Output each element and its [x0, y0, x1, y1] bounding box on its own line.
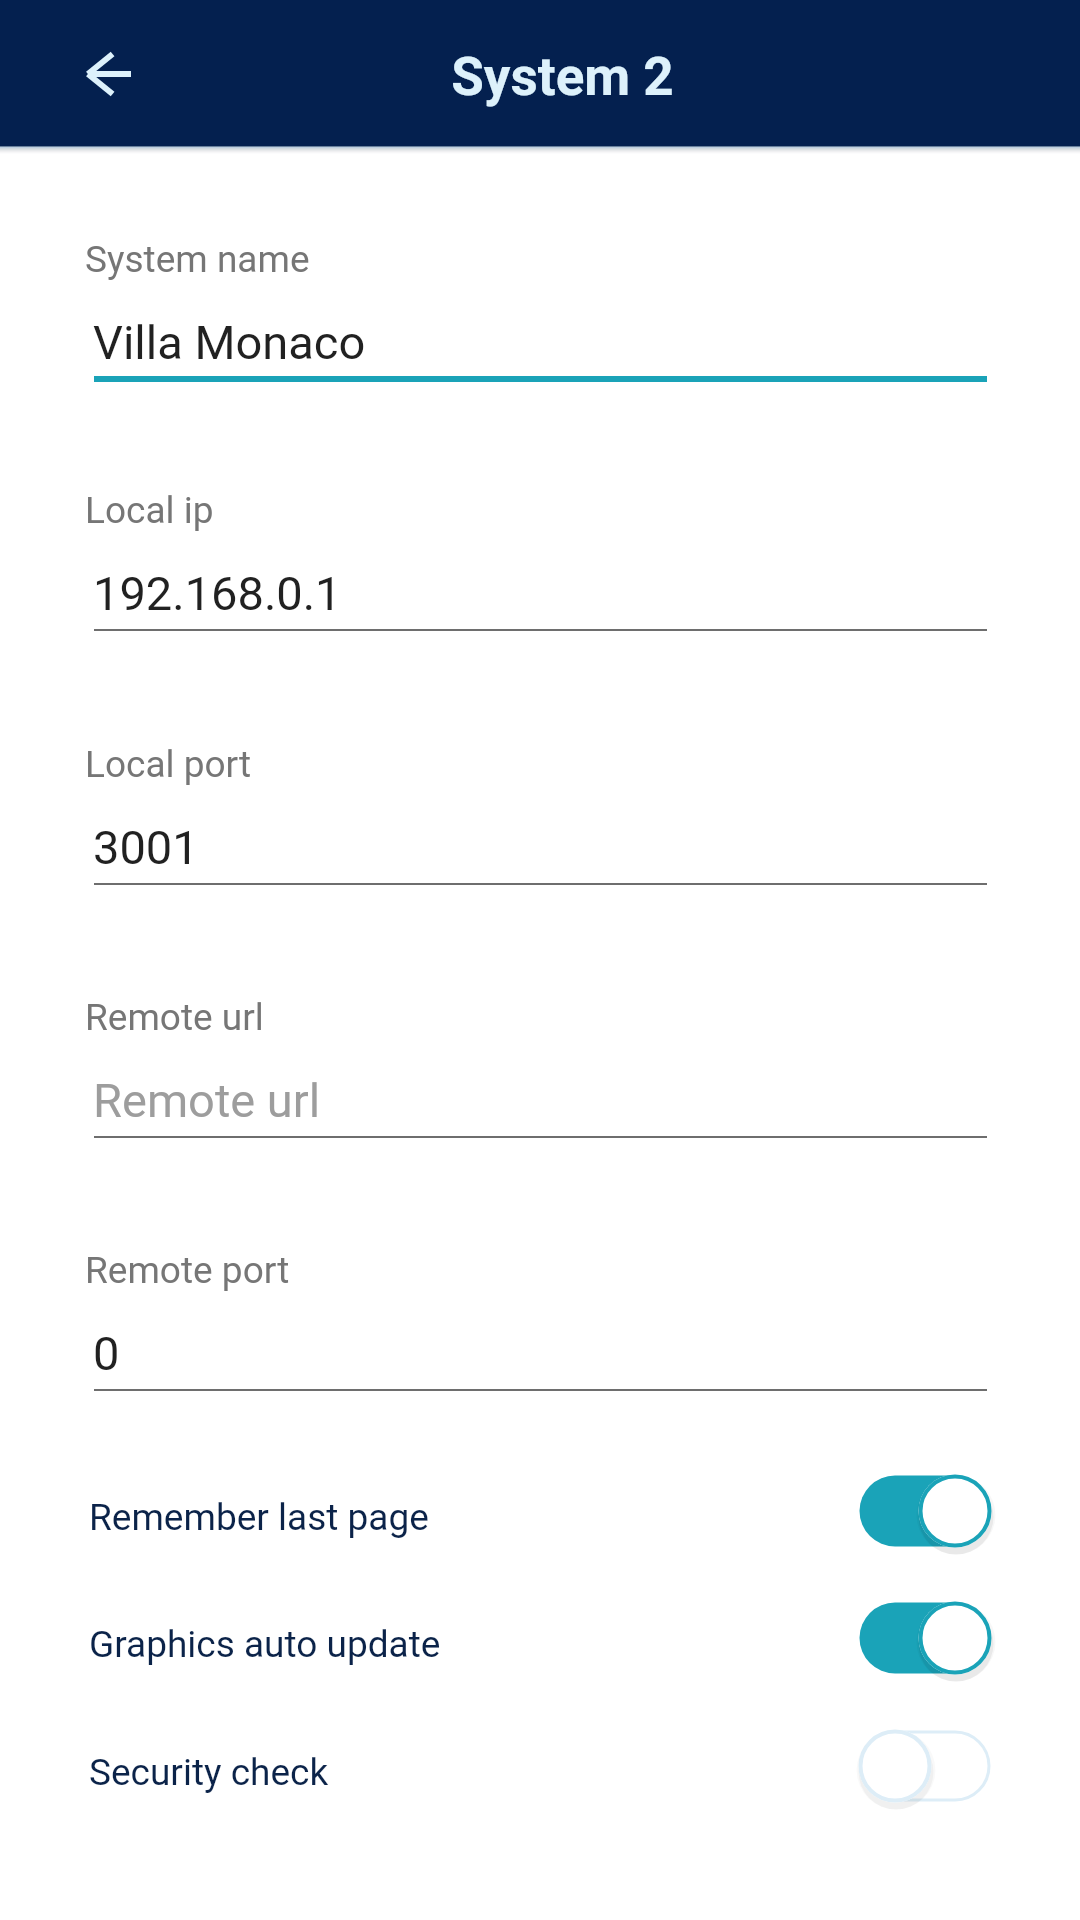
staticText: 192.168.0.1	[93, 566, 342, 621]
button[interactable]: Graphics auto update	[0, 1580, 1080, 1708]
staticText: Security check	[89, 1751, 329, 1794]
button[interactable]: Security check	[0, 1708, 1080, 1836]
staticText: 0	[93, 1326, 120, 1381]
staticText: System name	[85, 238, 310, 281]
button[interactable]	[85, 739, 979, 891]
button[interactable]	[85, 1245, 979, 1397]
staticText: Remote port	[85, 1249, 290, 1292]
button[interactable]: Back	[67, 31, 153, 117]
staticText: Local port	[85, 743, 252, 786]
staticText: 3001	[93, 820, 199, 875]
staticText: System 2	[451, 46, 674, 108]
staticText: Remember last page	[89, 1496, 429, 1539]
button[interactable]	[85, 234, 979, 386]
staticText: Villa Monaco	[93, 315, 366, 370]
button[interactable]	[85, 485, 979, 637]
staticText: Graphics auto update	[89, 1623, 441, 1666]
staticText: Local ip	[85, 489, 214, 532]
button[interactable]: Remember last page	[0, 1453, 1080, 1581]
staticText: Remote url	[85, 996, 264, 1039]
staticText: Remote url	[93, 1073, 321, 1128]
button[interactable]	[85, 992, 979, 1144]
